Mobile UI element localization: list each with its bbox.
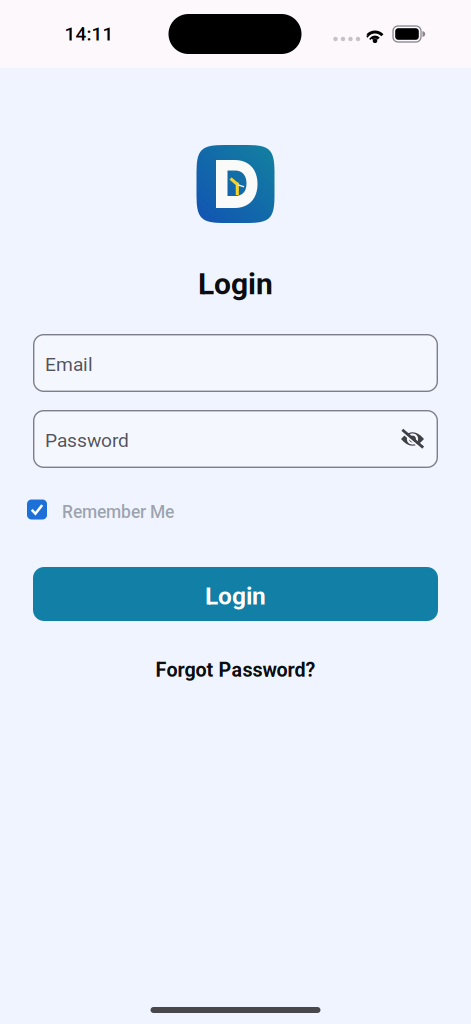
staticText: Email (45, 353, 93, 376)
staticText: 14:11 (64, 23, 113, 45)
staticText: Login (198, 266, 273, 302)
button[interactable]: Login (33, 567, 438, 621)
button[interactable]: Forgot Password? (155, 650, 315, 690)
staticText: Login (205, 582, 266, 610)
staticText: Password (45, 429, 129, 452)
button[interactable]: Password (33, 410, 438, 468)
button[interactable]: Remember Me (27, 499, 174, 520)
button[interactable]: Email (33, 334, 438, 392)
staticText: Forgot Password? (155, 658, 315, 681)
staticText: Remember Me (62, 502, 174, 522)
